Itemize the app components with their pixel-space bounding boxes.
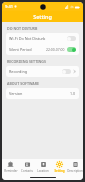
button[interactable]: Version <box>6 88 79 99</box>
staticText: Version <box>9 91 70 96</box>
button[interactable]: Toggle off <box>62 69 71 74</box>
staticText: RECORDING SETTINGS <box>7 59 46 64</box>
button[interactable]: Location <box>35 159 51 175</box>
staticText: 1.0 <box>70 91 76 96</box>
button[interactable]: Toggle on <box>67 47 76 52</box>
staticText: Setting <box>54 169 65 173</box>
staticText: Description <box>67 169 83 173</box>
staticText: 22:00-07:00 <box>46 47 65 52</box>
button[interactable]: Silent Period <box>6 44 79 55</box>
button[interactable]: Description <box>67 159 83 175</box>
staticText: Location <box>37 169 49 173</box>
staticText: DO NOT DISTURB <box>7 26 38 31</box>
button[interactable]: Contacts <box>19 159 35 175</box>
staticText: Recording <box>9 69 62 74</box>
staticText: Wi-Fi Do Not Disturb <box>9 36 67 41</box>
button[interactable]: Reminder <box>2 159 19 175</box>
other: Open <box>73 69 76 74</box>
button[interactable]: Toggle off <box>67 36 76 41</box>
staticText: Contacts <box>21 169 33 173</box>
button[interactable]: Recording <box>6 66 79 77</box>
staticText: Setting <box>33 13 52 20</box>
staticText: 9:41 <box>5 4 13 9</box>
button[interactable]: Wi-Fi Do Not Disturb <box>6 33 79 44</box>
staticText: Reminder <box>4 169 18 173</box>
staticText: Silent Period <box>9 47 46 52</box>
staticText: ABOUT SOFTWARE <box>7 81 40 86</box>
button[interactable]: Setting <box>51 159 67 175</box>
